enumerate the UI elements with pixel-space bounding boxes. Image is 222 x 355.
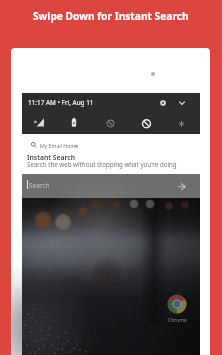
button[interactable] <box>167 294 187 314</box>
staticText: Search <box>29 181 50 190</box>
button[interactable] <box>158 98 168 108</box>
staticText: 11:17 AM • Fri, Aug 11 <box>28 98 94 107</box>
staticText: Chrome <box>168 317 187 324</box>
button[interactable]: My Email Home <box>22 134 200 174</box>
button[interactable]: Swipe Down for Instant Search <box>33 9 189 23</box>
staticText: Search the web without stopping what you… <box>27 160 177 168</box>
button[interactable]: Chrome <box>22 198 200 355</box>
button[interactable] <box>176 181 188 193</box>
staticText: Instant Search <box>27 153 76 162</box>
button[interactable] <box>177 98 187 108</box>
staticText: My Email Home <box>40 142 79 149</box>
button[interactable]: Search <box>22 174 200 198</box>
